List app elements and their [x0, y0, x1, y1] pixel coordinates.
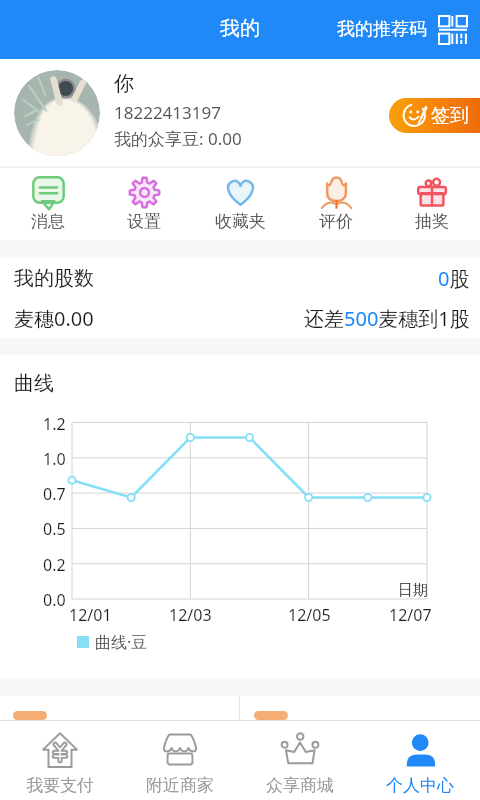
- button[interactable]: 个人中心: [360, 721, 480, 800]
- button[interactable]: 麦穗0.00: [0, 298, 480, 338]
- staticText: 收藏夹: [215, 211, 266, 232]
- staticText: 个人中心: [386, 775, 454, 796]
- button[interactable]: 评价: [288, 168, 384, 240]
- staticText: 抽奖: [415, 211, 449, 232]
- button[interactable]: 设置: [96, 168, 192, 240]
- staticText: 0.0: [43, 589, 66, 611]
- staticText: 我的股数: [14, 266, 94, 291]
- staticText: 1.2: [43, 413, 66, 435]
- button[interactable]: 我要支付: [0, 721, 120, 800]
- staticText: 评价: [319, 211, 353, 232]
- staticText: 签到: [431, 104, 469, 128]
- button[interactable]: 我的推荐码: [333, 10, 431, 49]
- button[interactable]: [240, 696, 480, 720]
- staticText: 我的众享豆: 0.00: [114, 127, 242, 150]
- button[interactable]: 签到: [389, 98, 480, 133]
- button[interactable]: Scan QR code: [439, 16, 467, 44]
- staticText: 0.2: [43, 554, 66, 576]
- staticText: 1.0: [43, 448, 66, 470]
- staticText: 众享商城: [266, 775, 334, 796]
- staticText: 0.5: [43, 518, 66, 540]
- staticText: 还差500麦穗到1股: [304, 305, 470, 332]
- staticText: 我的: [220, 16, 260, 41]
- staticText: 0股: [438, 265, 470, 292]
- staticText: 曲线·豆: [95, 631, 148, 653]
- button[interactable]: 我的股数: [0, 258, 480, 298]
- staticText: 我的推荐码: [337, 18, 427, 41]
- staticText: 曲线: [14, 371, 54, 396]
- staticText: 12/03: [169, 604, 212, 626]
- staticText: 12/07: [389, 604, 432, 626]
- button[interactable]: 收藏夹: [192, 168, 288, 240]
- button[interactable]: 抽奖: [384, 168, 480, 240]
- button[interactable]: [0, 696, 239, 720]
- button[interactable]: 消息: [0, 168, 96, 240]
- staticText: 0.7: [43, 483, 66, 505]
- staticText: 你: [114, 71, 134, 96]
- staticText: 12/05: [288, 604, 331, 626]
- staticText: 麦穗0.00: [14, 305, 94, 332]
- staticText: 附近商家: [146, 775, 214, 796]
- staticText: 设置: [127, 211, 161, 232]
- button[interactable]: 众享商城: [240, 721, 360, 800]
- staticText: 消息: [31, 211, 65, 232]
- button[interactable]: 附近商家: [120, 721, 240, 800]
- staticText: 12/01: [69, 604, 112, 626]
- staticText: 18222413197: [114, 101, 221, 124]
- staticText: 日期: [398, 581, 428, 600]
- staticText: 我要支付: [26, 775, 94, 796]
